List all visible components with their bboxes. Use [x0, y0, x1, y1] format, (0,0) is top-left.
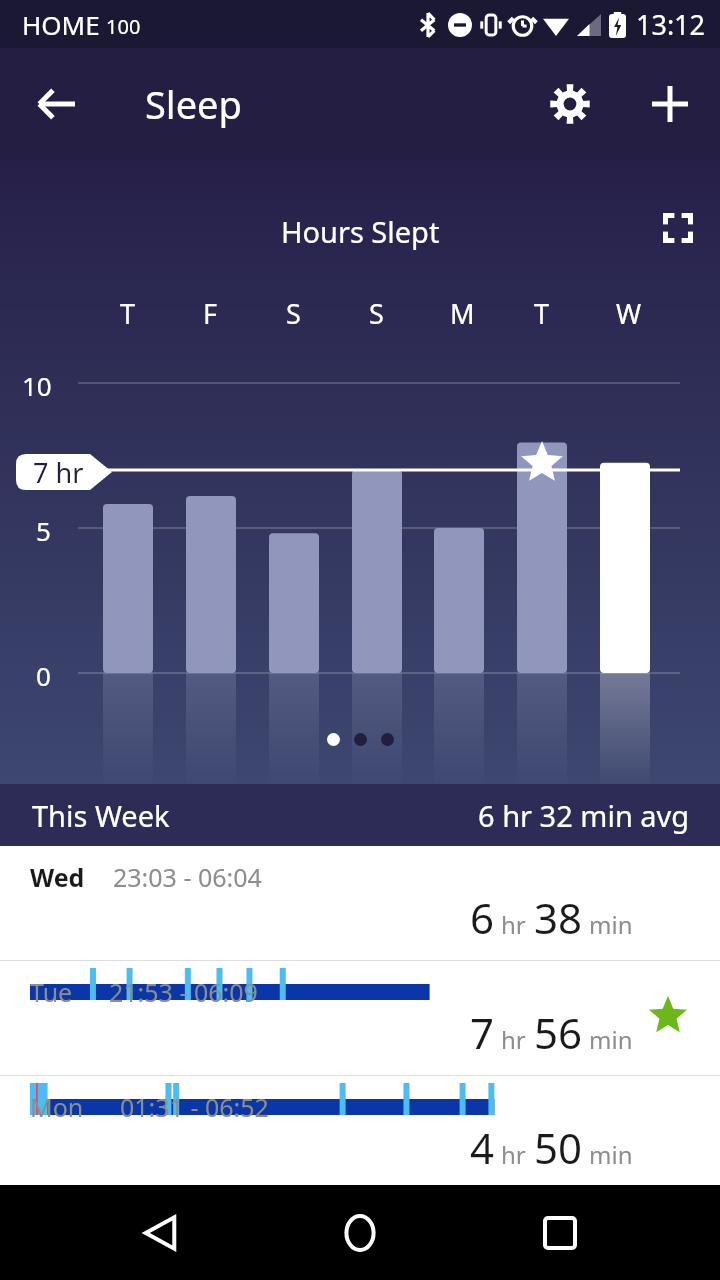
button[interactable]: Home: [325, 1198, 395, 1268]
staticText: hr: [501, 1138, 526, 1171]
staticText: 7 hr: [33, 454, 84, 491]
staticText: 6 hr 32 min avg: [478, 796, 690, 835]
staticText: 00:46 - 07:47: [111, 1205, 260, 1239]
staticText: M: [450, 295, 475, 332]
staticText: S: [369, 295, 384, 332]
staticText: Hours Slept: [281, 212, 440, 251]
button[interactable]: This Week: [0, 784, 720, 846]
staticText: 6: [470, 889, 495, 946]
button[interactable]: Tue: [0, 961, 720, 1075]
staticText: This Week: [32, 796, 170, 835]
staticText: 0: [36, 658, 51, 693]
staticText: min: [589, 908, 633, 941]
staticText: hr: [501, 1023, 526, 1056]
staticText: 13:12: [636, 6, 706, 43]
staticText: Tue: [30, 975, 73, 1009]
staticText: 38: [534, 889, 583, 946]
staticText: T: [534, 295, 550, 332]
button[interactable]: Settings: [538, 72, 602, 136]
staticText: hr: [501, 908, 526, 941]
staticText: HOME: [22, 7, 100, 42]
staticText: 5: [36, 513, 51, 548]
staticText: 100: [106, 13, 141, 40]
button[interactable]: Back: [125, 1198, 195, 1268]
button[interactable]: Sun: [0, 1191, 720, 1251]
staticText: F: [203, 295, 218, 332]
staticText: min: [589, 1023, 633, 1056]
staticText: 21:53 - 06:09: [109, 975, 258, 1009]
staticText: 56: [534, 1004, 583, 1061]
staticText: 4: [470, 1119, 495, 1176]
button[interactable]: Wed: [0, 846, 720, 960]
staticText: min: [589, 1138, 633, 1171]
button[interactable]: Mon: [0, 1076, 720, 1190]
button[interactable]: Fullscreen: [650, 200, 706, 256]
staticText: T: [120, 295, 136, 332]
staticText: Mon: [30, 1090, 84, 1124]
staticText: W: [616, 295, 642, 332]
button[interactable]: Back: [24, 72, 88, 136]
staticText: 7: [470, 1004, 495, 1061]
staticText: Sleep: [145, 78, 242, 130]
staticText: 23:03 - 06:04: [113, 860, 262, 894]
staticText: S: [286, 295, 301, 332]
staticText: 01:31 - 06:52: [120, 1090, 269, 1124]
staticText: 50: [534, 1119, 583, 1176]
staticText: Wed: [30, 860, 85, 894]
staticText: 10: [22, 368, 52, 403]
button[interactable]: Recents: [525, 1198, 595, 1268]
button[interactable]: Add: [638, 72, 702, 136]
